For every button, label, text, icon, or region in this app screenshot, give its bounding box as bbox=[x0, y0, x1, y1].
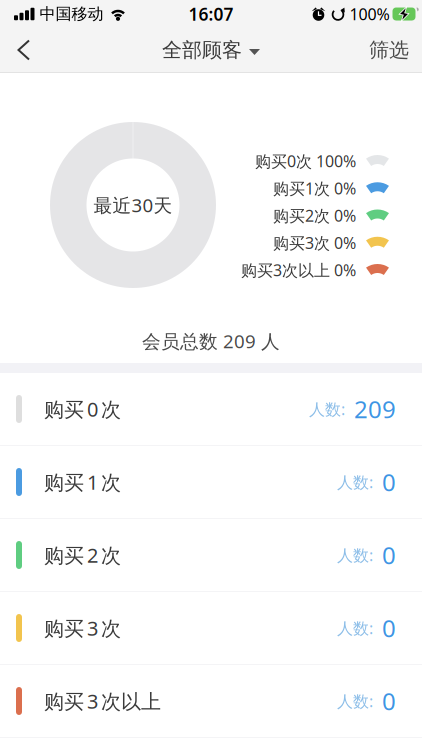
staticText: 购买 0 次 bbox=[44, 396, 121, 422]
staticText: 购买 2 次 bbox=[44, 542, 121, 568]
staticText: 购买1次 0% bbox=[273, 178, 356, 199]
staticText: 购买3次 0% bbox=[273, 232, 356, 253]
button[interactable]: 购买 0 次 bbox=[0, 373, 422, 446]
staticText: 购买 1 次 bbox=[44, 469, 121, 495]
staticText: 购买3次以上 0% bbox=[241, 259, 356, 281]
staticText: 209 bbox=[354, 393, 396, 425]
staticText: 人数: bbox=[337, 690, 373, 712]
button[interactable]: 全部顾客 bbox=[162, 38, 260, 62]
staticText: 购买 3 次以上 bbox=[44, 688, 161, 714]
staticText: 中国移动 bbox=[39, 4, 103, 24]
staticText: 0 bbox=[382, 685, 396, 717]
staticText: 0 bbox=[382, 466, 396, 498]
staticText: 人数: bbox=[337, 471, 373, 493]
staticText: 会员总数 209 人 bbox=[142, 329, 280, 353]
staticText: 0 bbox=[382, 612, 396, 644]
staticText: 购买0次 100% bbox=[255, 150, 356, 172]
button[interactable]: 购买 1 次 bbox=[0, 446, 422, 519]
button[interactable]: 购买 3 次以上 bbox=[0, 665, 422, 738]
staticText: 0 bbox=[382, 539, 396, 571]
staticText: 全部顾客 bbox=[162, 38, 242, 62]
staticText: 筛选 bbox=[369, 38, 409, 62]
staticText: 人数: bbox=[337, 544, 373, 566]
button[interactable]: 筛选 bbox=[369, 38, 422, 62]
staticText: 100% bbox=[349, 3, 389, 25]
button[interactable]: 购买 3 次 bbox=[0, 592, 422, 665]
staticText: 16:07 bbox=[188, 2, 233, 25]
staticText: 最近30天 bbox=[93, 193, 172, 217]
staticText: 人数: bbox=[309, 398, 345, 420]
button[interactable]: 购买 2 次 bbox=[0, 519, 422, 592]
staticText: 购买 3 次 bbox=[44, 615, 121, 641]
staticText: 人数: bbox=[337, 617, 373, 639]
staticText: 购买2次 0% bbox=[273, 205, 356, 226]
button[interactable] bbox=[0, 39, 30, 60]
